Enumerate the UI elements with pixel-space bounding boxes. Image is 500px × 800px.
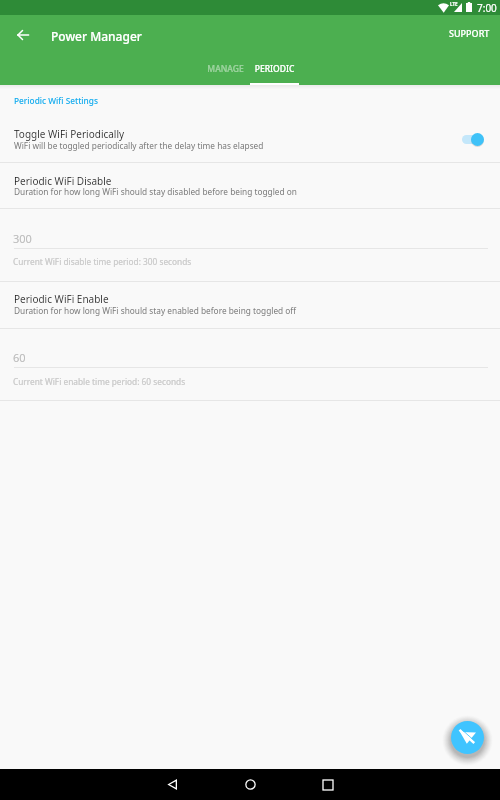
staticText: WiFi will be toggled periodically after … — [14, 140, 264, 151]
staticText: Current WiFi enable time period: 60 seco… — [13, 376, 186, 387]
button[interactable]: Periodic WiFi Disable duration — [0, 209, 500, 281]
button[interactable]: MANAGE — [201, 63, 250, 85]
staticText: Duration for how long WiFi should stay d… — [14, 186, 297, 197]
staticText: MANAGE — [201, 63, 250, 75]
button[interactable]: Periodic WiFi Enable — [0, 282, 500, 328]
button[interactable]: Home — [211, 769, 289, 800]
button[interactable]: Back — [9, 21, 37, 49]
staticText: Periodic WiFi Enable — [14, 292, 109, 306]
staticText: PERIODIC — [250, 63, 299, 75]
staticText: Periodic WiFi Disable — [14, 174, 112, 188]
button[interactable]: Toggle WiFi Periodically — [0, 119, 500, 162]
staticText: Power Manager — [51, 28, 142, 44]
staticText: 7:00 — [477, 1, 497, 15]
staticText: LTE — [450, 1, 458, 7]
staticText: Periodic Wifi Settings — [14, 95, 98, 106]
button[interactable]: Toggle WiFi Periodically — [459, 131, 487, 149]
staticText: Current WiFi disable time period: 300 se… — [13, 256, 192, 267]
staticText: 60 — [13, 350, 26, 365]
button[interactable]: Toggle WiFi — [451, 721, 484, 754]
staticText: Duration for how long WiFi should stay e… — [14, 305, 297, 316]
button[interactable]: PERIODIC — [250, 63, 299, 85]
staticText: Toggle WiFi Periodically — [14, 127, 125, 141]
button[interactable]: SUPPORT — [442, 22, 497, 44]
button[interactable]: Recents — [289, 769, 367, 800]
staticText: 300 — [13, 231, 32, 246]
button[interactable]: Periodic WiFi Enable duration — [0, 329, 500, 400]
staticText: SUPPORT — [449, 27, 490, 39]
button[interactable]: Back — [133, 769, 211, 800]
button[interactable]: Periodic WiFi Disable — [0, 163, 500, 208]
